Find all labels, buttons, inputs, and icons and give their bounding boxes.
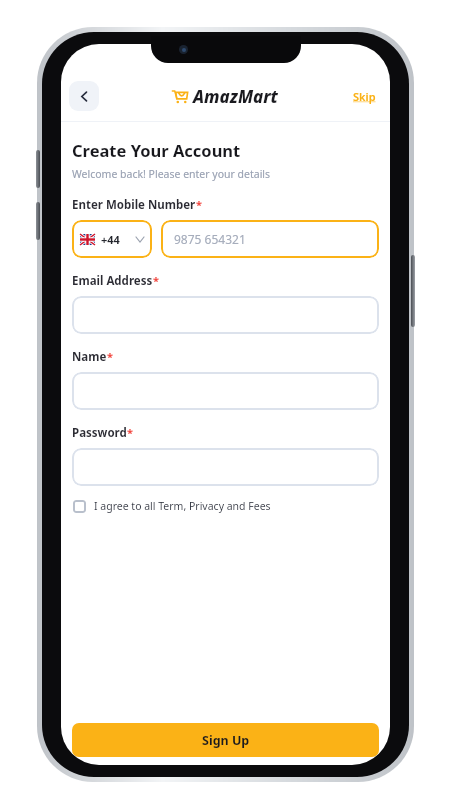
staticText: * [127, 425, 133, 440]
button[interactable]: Skip [353, 89, 376, 104]
staticText: AmazMart [193, 85, 278, 108]
staticText: Sign Up [202, 732, 250, 749]
button[interactable]: I agree to all Term, Privacy and Fees [72, 497, 272, 515]
staticText: Password [72, 425, 127, 441]
staticText: 9875 654321 [174, 231, 246, 247]
staticText: Email Address [72, 273, 153, 289]
button[interactable]: 9875 654321 [161, 220, 379, 258]
button[interactable] [72, 448, 379, 486]
staticText: Create Your Account [72, 139, 241, 161]
button[interactable] [72, 296, 379, 334]
staticText: Skip [353, 89, 376, 104]
button[interactable] [72, 372, 379, 410]
staticText: Name [72, 349, 107, 365]
button[interactable]: +44 [72, 220, 152, 258]
staticText: Enter Mobile Number [72, 197, 196, 213]
button[interactable]: Back [69, 81, 99, 111]
staticText: +44 [101, 232, 120, 247]
staticText: Welcome back! Please enter your details [72, 167, 271, 181]
button[interactable]: Sign Up [72, 723, 379, 757]
staticText: * [153, 273, 159, 288]
staticText: * [196, 197, 202, 212]
staticText: * [107, 349, 113, 364]
staticText: I agree to all Term, Privacy and Fees [94, 499, 271, 513]
